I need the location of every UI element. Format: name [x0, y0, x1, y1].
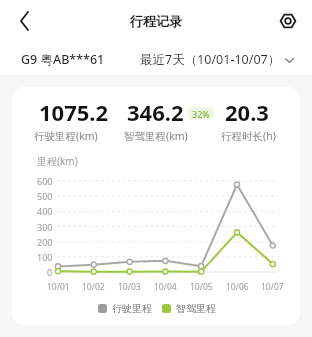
staticText: 346.2 [127, 97, 184, 124]
staticText: 行驶里程(km) [34, 129, 98, 143]
staticText: 32% [192, 108, 210, 120]
staticText: 300 [37, 221, 53, 233]
staticText: 500 [37, 190, 53, 202]
staticText: 200 [37, 236, 53, 248]
button[interactable] [277, 10, 299, 32]
staticText: 行程时长(h) [221, 129, 276, 143]
staticText: 行程记录 [130, 13, 182, 29]
staticText: 行驶里程 [112, 302, 152, 315]
button[interactable]: G9 粤AB***61 [21, 50, 141, 68]
staticText: 400 [37, 205, 53, 217]
staticText: 智驾里程 [176, 302, 216, 315]
staticText: 10/02 [82, 281, 105, 293]
staticText: 智驾里程(km) [124, 129, 188, 143]
staticText: 10/06 [226, 281, 249, 293]
staticText: 10/01 [47, 281, 70, 293]
staticText: 里程(km) [37, 154, 78, 168]
staticText: 600 [37, 175, 53, 187]
button[interactable] [14, 9, 36, 33]
staticText: 0 [47, 266, 53, 278]
staticText: 最近7天（10/01-10/07） [140, 51, 281, 68]
staticText: 10/04 [154, 281, 177, 293]
button[interactable]: 最近7天（10/01-10/07） [138, 50, 294, 68]
staticText: 1075.2 [39, 97, 109, 124]
staticText: 20.3 [225, 97, 269, 124]
staticText: 100 [37, 251, 53, 263]
staticText: 10/03 [118, 281, 141, 293]
staticText: G9 粤AB***61 [21, 51, 105, 68]
staticText: 10/05 [190, 281, 213, 293]
staticText: 10/07 [261, 281, 284, 293]
